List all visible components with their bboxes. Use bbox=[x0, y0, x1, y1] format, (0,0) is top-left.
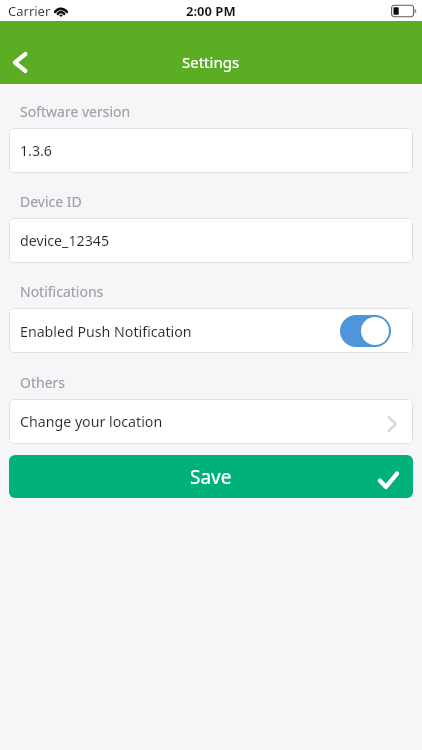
staticText: Settings bbox=[182, 52, 240, 72]
staticText: Software version bbox=[20, 102, 131, 121]
button[interactable]: 1.3.6 bbox=[9, 128, 413, 173]
staticText: Device ID bbox=[20, 192, 82, 211]
staticText: 2:00 PM bbox=[186, 2, 236, 20]
button[interactable]: Push notifications toggle bbox=[340, 315, 391, 347]
staticText: Enabled Push Notification bbox=[20, 322, 192, 341]
other: Change your location bbox=[387, 416, 397, 432]
staticText: 1.3.6 bbox=[20, 141, 52, 160]
button[interactable]: device_12345 bbox=[9, 218, 413, 263]
button[interactable]: Back bbox=[0, 40, 40, 84]
button[interactable]: Change your location bbox=[9, 399, 413, 444]
staticText: Others bbox=[20, 373, 66, 392]
staticText: Save bbox=[190, 464, 232, 490]
staticText: Carrier bbox=[8, 2, 51, 20]
staticText: Notifications bbox=[20, 282, 104, 301]
staticText: Change your location bbox=[20, 412, 163, 431]
staticText: device_12345 bbox=[20, 231, 109, 250]
button[interactable]: Save bbox=[9, 455, 413, 498]
button[interactable]: Enabled Push Notification bbox=[9, 308, 413, 353]
